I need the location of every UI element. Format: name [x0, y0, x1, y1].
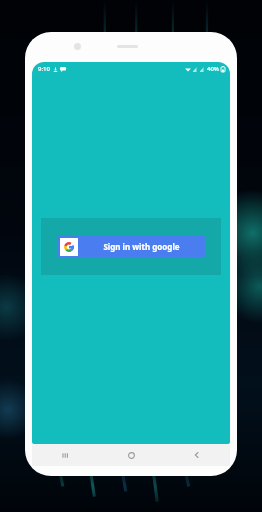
button[interactable]: Back: [164, 444, 230, 466]
staticText: Sign in with google: [103, 241, 180, 252]
button[interactable]: Sign in with google: [58, 236, 205, 257]
staticText: 9:10: [38, 65, 50, 73]
staticText: 40%: [207, 65, 219, 73]
button[interactable]: Home: [98, 444, 164, 466]
button[interactable]: Recent apps: [32, 444, 98, 466]
